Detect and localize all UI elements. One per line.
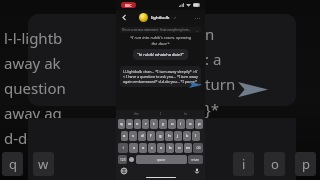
button[interactable]: space bbox=[136, 155, 187, 164]
staticText: to bbox=[184, 112, 188, 116]
button[interactable]: h bbox=[165, 131, 173, 141]
staticText: n bbox=[178, 145, 181, 151]
button[interactable]: l-l-lightbulb chan... *I turn away sleep… bbox=[120, 66, 201, 87]
staticText: o bbox=[271, 155, 279, 173]
staticText: away ak bbox=[4, 53, 61, 73]
button[interactable]: ⇧ bbox=[118, 143, 128, 153]
staticText: turn bbox=[205, 74, 236, 94]
staticText: space bbox=[157, 158, 166, 162]
button[interactable]: i bbox=[177, 119, 185, 129]
staticText: o bbox=[189, 121, 192, 127]
staticText: k bbox=[186, 133, 189, 139]
staticText: r bbox=[145, 121, 147, 127]
button[interactable]: y bbox=[159, 119, 167, 129]
staticText: w bbox=[38, 155, 49, 173]
staticText: · ✓ bbox=[172, 15, 177, 20]
staticText: "hi rubik! whatcha doin?" bbox=[137, 52, 184, 57]
button[interactable]: b bbox=[166, 143, 174, 153]
button[interactable]: k bbox=[183, 131, 191, 141]
button[interactable]: e bbox=[134, 119, 141, 129]
button[interactable]: return bbox=[188, 155, 203, 164]
button[interactable]: n bbox=[175, 143, 183, 153]
button[interactable]: u bbox=[168, 119, 176, 129]
button[interactable]: ⌫ bbox=[193, 143, 203, 153]
staticText: p bbox=[198, 121, 201, 127]
button[interactable]: d bbox=[138, 131, 146, 141]
staticText: ⋯ bbox=[194, 14, 200, 21]
staticText: *I run into rubik's room, opening the do… bbox=[128, 35, 193, 46]
staticText: q bbox=[9, 155, 17, 173]
staticText: ⇧ bbox=[122, 146, 125, 150]
staticText: x bbox=[142, 145, 145, 151]
staticText: i bbox=[180, 121, 182, 127]
staticText: return bbox=[191, 158, 200, 162]
button[interactable]: q bbox=[118, 119, 125, 129]
button[interactable]: l bbox=[192, 131, 200, 141]
staticText: b bbox=[169, 145, 172, 151]
staticText: lightbulb bbox=[151, 15, 170, 21]
staticText: 123 bbox=[120, 158, 126, 162]
button[interactable]: lightbulb bbox=[139, 13, 192, 22]
staticText: z bbox=[133, 145, 135, 151]
staticText: q bbox=[120, 121, 123, 127]
button[interactable]: g bbox=[156, 131, 164, 141]
staticText: ⌫ bbox=[196, 146, 201, 150]
button[interactable]: to bbox=[180, 112, 192, 116]
button[interactable]: s bbox=[129, 131, 137, 141]
button[interactable]: More options bbox=[192, 13, 201, 22]
staticText: p bbox=[302, 155, 310, 173]
button[interactable]: w bbox=[126, 119, 133, 129]
button[interactable]: c bbox=[148, 143, 156, 153]
staticText: l-l-lightbulb chan... *I turn away sleep… bbox=[123, 69, 198, 84]
staticText: : a bbox=[205, 49, 222, 69]
button[interactable]: Back bbox=[120, 13, 129, 22]
staticText: question bbox=[4, 78, 66, 98]
button[interactable]: o bbox=[186, 119, 194, 129]
staticText: s bbox=[132, 133, 135, 139]
staticText: d-d-do y bbox=[4, 128, 62, 148]
button[interactable]: Voice input bbox=[193, 167, 201, 175]
staticText: t bbox=[153, 121, 155, 127]
button[interactable]: v bbox=[157, 143, 165, 153]
staticText: the bbox=[134, 112, 139, 116]
staticText: I bbox=[160, 112, 162, 116]
staticText: m bbox=[186, 145, 190, 151]
button[interactable]: r bbox=[142, 119, 149, 129]
staticText: away ag bbox=[4, 103, 62, 123]
staticText: v bbox=[160, 145, 163, 151]
staticText: u bbox=[171, 121, 174, 127]
staticText: a bbox=[123, 133, 126, 139]
button[interactable]: f bbox=[147, 131, 155, 141]
button[interactable]: Change keyboard language bbox=[120, 167, 128, 175]
button[interactable]: Send bbox=[187, 78, 203, 90]
button[interactable]: 123 bbox=[118, 155, 127, 164]
button[interactable]: z bbox=[129, 143, 138, 153]
button[interactable]: the bbox=[130, 112, 143, 116]
button[interactable]: I bbox=[156, 112, 166, 116]
staticText: c bbox=[151, 145, 154, 151]
button[interactable]: j bbox=[174, 131, 182, 141]
staticText: i bbox=[242, 155, 246, 173]
staticText: h bbox=[168, 133, 171, 139]
button[interactable]: "hi rubik! whatcha doin?" bbox=[133, 49, 188, 60]
staticText: f bbox=[150, 133, 152, 139]
staticText: j bbox=[177, 133, 179, 139]
staticText: e bbox=[136, 121, 139, 127]
button[interactable]: x bbox=[139, 143, 147, 153]
staticText: l-l-lightb bbox=[4, 28, 63, 48]
button[interactable]: a bbox=[121, 131, 128, 141]
button[interactable]: p bbox=[195, 119, 203, 129]
staticText: w bbox=[128, 121, 132, 127]
staticText: l bbox=[195, 133, 197, 139]
button[interactable]: m bbox=[184, 143, 192, 153]
button[interactable]: t bbox=[150, 119, 158, 129]
staticText: y bbox=[162, 121, 165, 127]
staticText: n bbox=[205, 24, 215, 44]
staticText: ⌄ bbox=[196, 29, 199, 32]
staticText: This is a serious statement. Treat every… bbox=[122, 28, 196, 32]
button[interactable]: This is a serious statement. Treat every… bbox=[120, 27, 201, 33]
staticText: }* bbox=[205, 99, 219, 119]
staticText: d bbox=[141, 133, 144, 139]
button[interactable]: Emoji bbox=[128, 155, 135, 164]
staticText: g bbox=[159, 133, 162, 139]
